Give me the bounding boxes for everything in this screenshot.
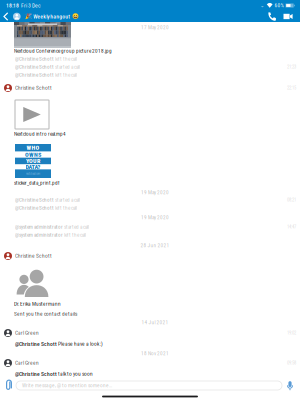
staticText: 14 Jul 2021 — [141, 319, 168, 326]
staticText: 19 May 2020 — [141, 214, 169, 221]
staticText: 😄 — [72, 13, 79, 20]
button[interactable]: Attach file — [2, 378, 16, 393]
button[interactable]: Record voice message — [282, 378, 298, 393]
staticText: 18 Nov 2021 — [141, 350, 169, 357]
staticText: 21:23 — [287, 64, 296, 70]
button[interactable]: Write message, @ to mention someone... — [16, 381, 282, 390]
staticText: 19:02 — [287, 330, 296, 336]
staticText: Nextcloud Conference group picture 2018.… — [14, 48, 112, 54]
staticText: Carl Green — [15, 330, 39, 336]
staticText: Sent you the contact details — [14, 311, 77, 317]
staticText: @Christine Schott — [15, 72, 54, 78]
staticText: talk to you soon — [57, 371, 93, 377]
staticText: @system administrator — [15, 224, 63, 230]
staticText: @Christine Schott — [15, 371, 57, 377]
staticText: started a call — [54, 197, 80, 203]
staticText: 60% — [275, 2, 284, 9]
staticText: sticker_data_print.pdf — [14, 180, 60, 186]
staticText: nextcloud.com — [26, 172, 40, 175]
staticText: left the call — [63, 232, 86, 238]
staticText: DATA? — [25, 163, 40, 170]
staticText: Carl Green — [15, 360, 39, 366]
staticText: left the call — [54, 205, 77, 211]
staticText: Weekly hangout — [33, 13, 70, 20]
staticText: started a call — [54, 64, 80, 70]
staticText: Write message, @ to mention someone... — [22, 382, 112, 389]
staticText: 🎉 — [25, 13, 32, 20]
staticText: 22:15 — [287, 85, 296, 91]
staticText: started a call — [63, 224, 89, 230]
staticText: ⌄ — [260, 2, 264, 9]
staticText: 17 May 2020 — [141, 24, 169, 31]
button[interactable]: Video call — [280, 11, 296, 22]
staticText: @Christine Schott — [15, 197, 54, 203]
staticText: 08:21 — [287, 197, 296, 203]
staticText: Please have a look :) — [57, 341, 103, 347]
staticText: 19 May 2020 — [141, 189, 169, 196]
staticText: left the call — [54, 72, 77, 78]
staticText: @Christine Schott — [15, 205, 54, 211]
staticText: 09:58 — [287, 360, 296, 366]
staticText: @Christine Schott — [15, 56, 54, 62]
staticText: 14:47 — [287, 224, 296, 230]
staticText: WHO — [26, 144, 39, 151]
staticText: @system administrator — [15, 232, 63, 238]
staticText: YOUR — [26, 157, 40, 165]
staticText: 18:18 — [6, 2, 19, 9]
staticText: Nextcloud intro real.mp4 — [14, 131, 66, 137]
staticText: 28 Jun 2021 — [140, 242, 169, 249]
button[interactable]: 🎉 — [11, 11, 79, 22]
button[interactable]: Back — [1, 11, 11, 22]
staticText: @Christine Schott — [15, 341, 57, 347]
staticText: @Christine Schott — [15, 64, 54, 70]
staticText: left the call — [54, 56, 77, 62]
staticText: OWNS — [25, 151, 41, 158]
button[interactable]: Voice call — [264, 11, 280, 22]
staticText: Dr. Erika Mustermann — [14, 301, 61, 307]
staticText: Christine Schott — [15, 85, 52, 91]
staticText: Fri 3 Dec — [19, 2, 41, 9]
staticText: Christine Schott — [15, 253, 52, 259]
